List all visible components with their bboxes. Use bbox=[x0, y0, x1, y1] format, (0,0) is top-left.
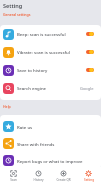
other: History bbox=[35, 170, 42, 177]
staticText: Vibrate: scan is successful bbox=[17, 49, 86, 55]
other: Scan bbox=[10, 170, 17, 177]
staticText: Help bbox=[3, 104, 11, 109]
staticText: Report bugs or what to improve bbox=[17, 158, 94, 164]
staticText: Google bbox=[80, 86, 94, 91]
button[interactable]: Report bugs or what to improve bbox=[0, 152, 101, 169]
staticText: General settings bbox=[3, 12, 31, 17]
button[interactable]: Search engine bbox=[0, 79, 101, 97]
button[interactable]: Rate us bbox=[0, 118, 101, 135]
button[interactable]: Share with friends bbox=[0, 135, 101, 152]
staticText: Create QR bbox=[56, 178, 71, 182]
button[interactable]: Setting bbox=[76, 168, 101, 182]
staticText: Setting bbox=[3, 2, 23, 9]
button[interactable]: Scan bbox=[0, 168, 26, 182]
staticText: Setting bbox=[84, 178, 94, 182]
staticText: Save to history bbox=[17, 67, 86, 73]
button[interactable]: Beep: scan is successful bbox=[0, 25, 101, 43]
button[interactable]: Create QR bbox=[51, 168, 76, 182]
staticText: Beep: scan is successful bbox=[17, 31, 86, 37]
button[interactable]: Vibrate: scan is successful bbox=[0, 43, 101, 61]
staticText: Search engine bbox=[17, 85, 80, 91]
button[interactable]: Save to history bbox=[0, 61, 101, 79]
staticText: Rate us bbox=[17, 124, 94, 130]
staticText: History bbox=[33, 178, 44, 182]
other: Setting bbox=[85, 170, 92, 177]
other: Create QR bbox=[60, 170, 67, 177]
staticText: Share with friends bbox=[17, 141, 94, 147]
staticText: Scan bbox=[10, 178, 17, 182]
button[interactable]: History bbox=[26, 168, 51, 182]
